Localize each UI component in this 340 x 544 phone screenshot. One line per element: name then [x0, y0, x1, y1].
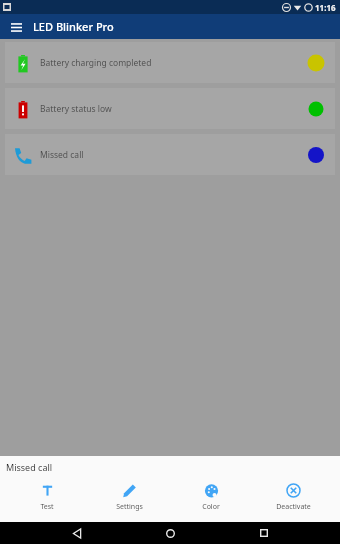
button[interactable]: Recent apps: [247, 522, 281, 544]
button[interactable]: Deactivate: [258, 481, 328, 514]
button[interactable]: Open navigation drawer: [8, 19, 24, 35]
staticText: Battery charging completed: [40, 57, 152, 69]
button[interactable]: Battery charging completed: [5, 42, 335, 83]
button[interactable]: Missed call: [5, 134, 335, 175]
button[interactable]: Settings: [94, 481, 164, 514]
staticText: Deactivate: [276, 502, 311, 512]
button[interactable]: Battery status low: [5, 88, 335, 129]
staticText: LED Blinker Pro: [33, 19, 114, 34]
button[interactable]: Test: [12, 481, 82, 514]
staticText: Settings: [116, 502, 143, 512]
staticText: Color: [202, 502, 220, 512]
staticText: Missed call: [40, 149, 84, 161]
staticText: Test: [40, 502, 54, 512]
staticText: Missed call: [6, 461, 53, 473]
button[interactable]: Home: [153, 522, 187, 544]
button[interactable]: Color: [176, 481, 246, 514]
staticText: 11:16: [315, 2, 336, 13]
button[interactable]: Back: [60, 522, 94, 544]
staticText: Battery status low: [40, 103, 112, 115]
